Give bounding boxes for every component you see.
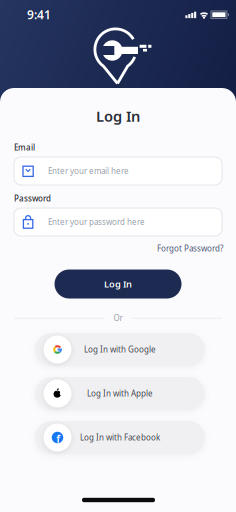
- staticText: Email: [14, 142, 35, 153]
- staticText: Enter your password here: [48, 217, 145, 227]
- staticText: Log In with Apple: [87, 388, 153, 399]
- staticText: Or: [113, 313, 122, 323]
- button[interactable]: Log In with Apple: [35, 377, 205, 410]
- staticText: Log In: [104, 278, 132, 290]
- staticText: Log In with Facebook: [80, 432, 160, 443]
- staticText: Log In: [96, 106, 140, 126]
- staticText: 9:41: [27, 6, 51, 22]
- staticText: Enter your email here: [48, 166, 129, 176]
- button[interactable]: Enter your email here: [14, 157, 222, 185]
- button[interactable]: Enter your password here: [14, 208, 222, 236]
- button[interactable]: Forgot Password?: [157, 243, 223, 254]
- button[interactable]: Log In with Google: [35, 333, 205, 366]
- button[interactable]: Log In with Facebook: [35, 421, 205, 454]
- staticText: f: [56, 431, 60, 446]
- staticText: Password: [14, 193, 51, 204]
- button[interactable]: Log In: [54, 269, 181, 298]
- staticText: Log In with Google: [84, 344, 156, 355]
- staticText: Forgot Password?: [157, 243, 223, 254]
